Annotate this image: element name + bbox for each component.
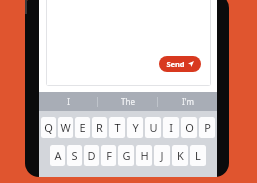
button[interactable]: G: [118, 145, 134, 166]
staticText: S: [71, 148, 78, 163]
staticText: D: [87, 148, 96, 163]
staticText: G: [122, 148, 131, 163]
staticText: O: [185, 120, 194, 135]
staticText: T: [114, 120, 121, 135]
button[interactable]: U: [145, 117, 161, 138]
button[interactable]: Y: [127, 117, 143, 138]
button[interactable]: J: [154, 145, 170, 166]
button[interactable]: The: [98, 92, 157, 111]
button[interactable]: Send: [46, 0, 211, 86]
button[interactable]: L: [190, 145, 206, 166]
button[interactable]: D: [84, 145, 99, 166]
button[interactable]: A: [50, 145, 65, 166]
button[interactable]: F: [101, 145, 116, 166]
button[interactable]: O: [181, 117, 197, 138]
staticText: A: [54, 148, 62, 163]
button[interactable]: P: [199, 117, 215, 138]
staticText: P: [204, 120, 211, 135]
button[interactable]: H: [136, 145, 152, 166]
button[interactable]: Send: [159, 56, 201, 72]
staticText: I: [67, 96, 70, 107]
staticText: R: [96, 120, 103, 135]
button[interactable]: K: [172, 145, 188, 166]
button[interactable]: T: [109, 117, 125, 138]
button[interactable]: E: [75, 117, 90, 138]
button[interactable]: I: [163, 117, 179, 138]
staticText: I'm: [182, 96, 194, 107]
button[interactable]: Q: [41, 117, 56, 138]
button[interactable]: R: [92, 117, 107, 138]
staticText: J: [160, 148, 164, 163]
staticText: F: [106, 148, 112, 163]
staticText: E: [79, 120, 86, 135]
staticText: U: [149, 120, 158, 135]
staticText: L: [195, 148, 201, 163]
other: Send: [188, 61, 194, 67]
staticText: Send: [166, 59, 185, 69]
staticText: W: [60, 120, 71, 135]
staticText: Q: [44, 120, 53, 135]
staticText: Y: [132, 120, 139, 135]
button[interactable]: S: [67, 145, 82, 166]
button[interactable]: I'm: [158, 92, 217, 111]
staticText: The: [121, 96, 135, 107]
staticText: H: [140, 148, 149, 163]
staticText: K: [177, 148, 184, 163]
staticText: I: [169, 120, 173, 135]
button[interactable]: I: [39, 92, 97, 111]
button[interactable]: W: [58, 117, 73, 138]
